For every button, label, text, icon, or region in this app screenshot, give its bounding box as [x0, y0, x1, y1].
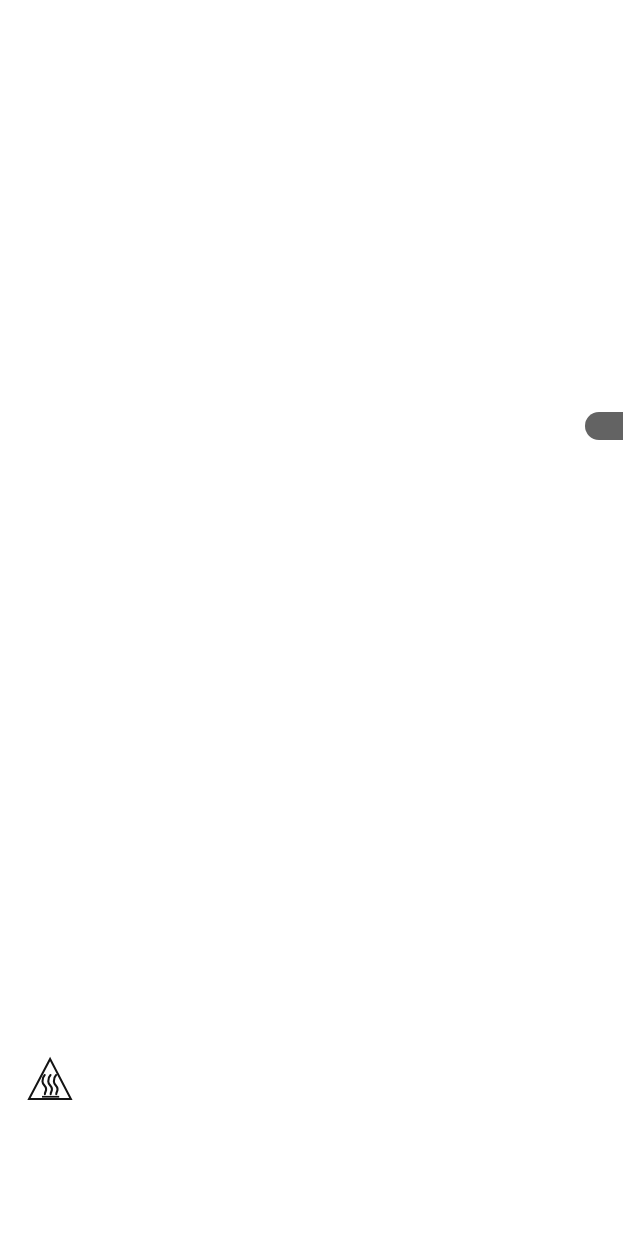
button[interactable]: Hot surface warning — [24, 1052, 76, 1104]
button[interactable]: Open side panel — [585, 412, 623, 440]
